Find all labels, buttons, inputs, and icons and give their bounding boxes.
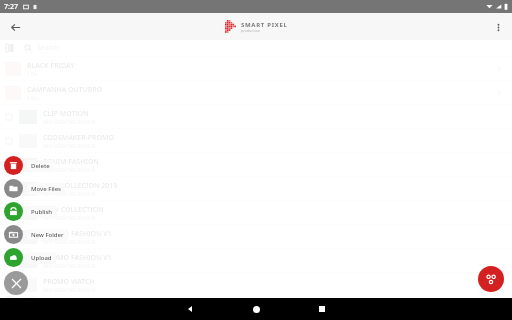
button[interactable]: Close menu (4, 271, 28, 295)
button[interactable]: Back (4, 16, 26, 38)
staticText: BLACK FRIDAY (27, 61, 75, 71)
button[interactable]: Recents (311, 298, 333, 320)
button[interactable]: PROMO FASHION V1 (0, 249, 512, 272)
button[interactable]: PROMO FASHION V1 (0, 225, 512, 248)
staticText: NEW COLLECTION (43, 205, 104, 215)
staticText: Publish (31, 208, 53, 216)
staticText: PROMO FASHION V1 (43, 229, 112, 239)
staticText: FALL COLLECION 2019 (43, 181, 118, 191)
button[interactable]: DENIM FASHION (0, 153, 512, 176)
staticText: production (241, 29, 261, 33)
button[interactable]: Move Files (4, 179, 65, 198)
staticText: SMART PIXEL (241, 21, 288, 29)
staticText: PROMO FASHION V1 (43, 253, 112, 263)
button[interactable]: Delete (4, 156, 54, 175)
staticText: New Folder (31, 231, 64, 239)
staticText: CLIP MOTION (43, 109, 89, 119)
staticText: Move Files (31, 185, 61, 193)
button[interactable]: Back (179, 298, 201, 320)
staticText: PROMO WATCH (43, 277, 95, 287)
staticText: CODEMAKER-PROMO (43, 133, 114, 143)
staticText: CAMPANHA OUTUBRO (27, 85, 103, 95)
button[interactable]: Publish (4, 202, 57, 221)
button[interactable]: Actions (478, 266, 504, 292)
button[interactable]: FALL COLLECION 2019 (0, 177, 512, 200)
staticText: 7:27 (4, 2, 18, 12)
button[interactable]: PROMO WATCH (0, 273, 512, 296)
button[interactable]: More options (488, 17, 508, 37)
staticText: Delete (31, 162, 50, 170)
button[interactable]: New Folder (4, 225, 68, 244)
staticText: Upload (31, 254, 52, 262)
button[interactable]: NEW COLLECTION (0, 201, 512, 224)
button[interactable]: Home (245, 298, 267, 320)
button[interactable]: Upload (4, 248, 56, 267)
staticText: MP4 1080x1080 00:00:15 (43, 167, 96, 173)
staticText: DENIM FASHION (43, 157, 99, 167)
